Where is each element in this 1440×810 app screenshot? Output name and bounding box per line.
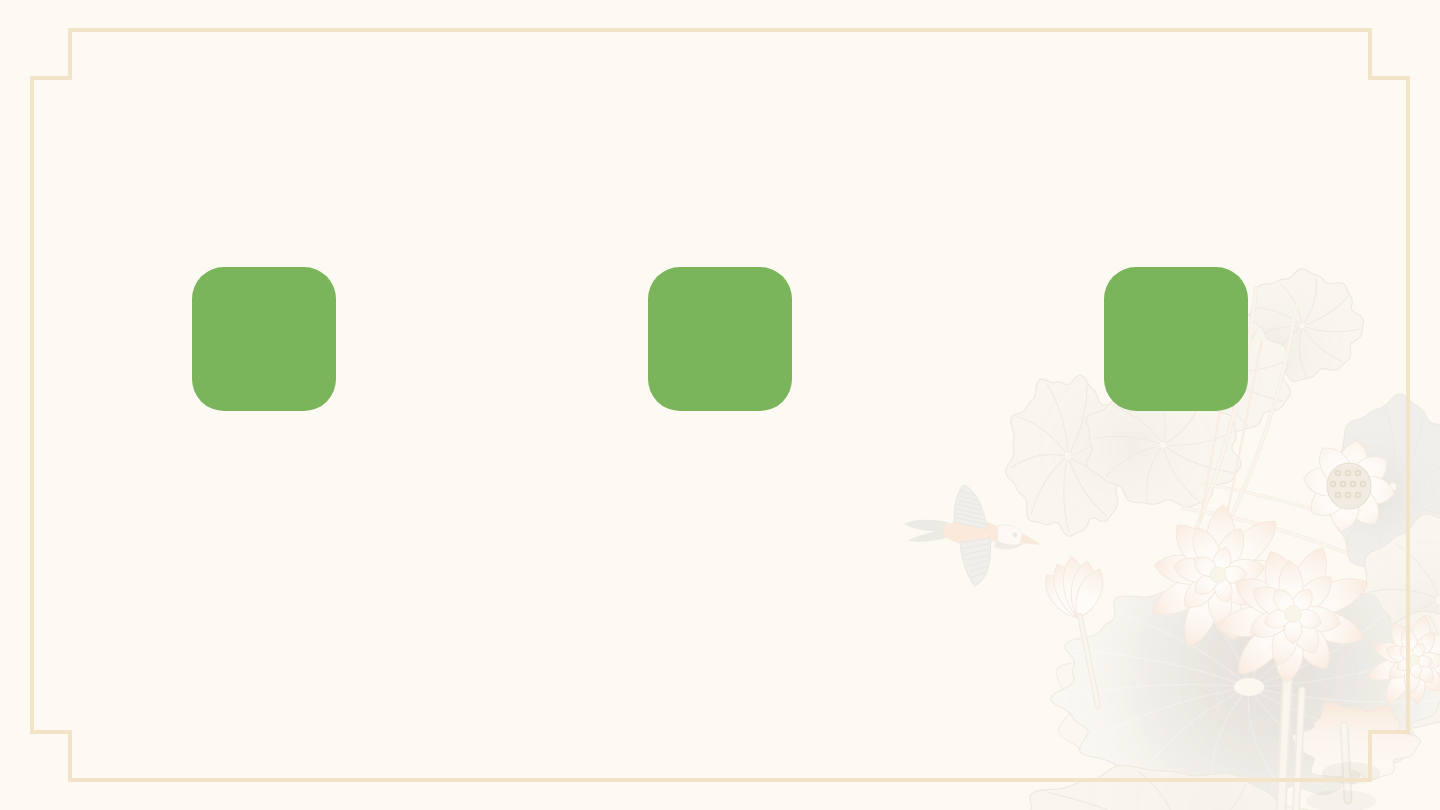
button[interactable]: Tile 2 — [648, 267, 792, 411]
button[interactable]: Tile 3 — [1104, 267, 1248, 411]
button[interactable]: Tile 1 — [192, 267, 336, 411]
